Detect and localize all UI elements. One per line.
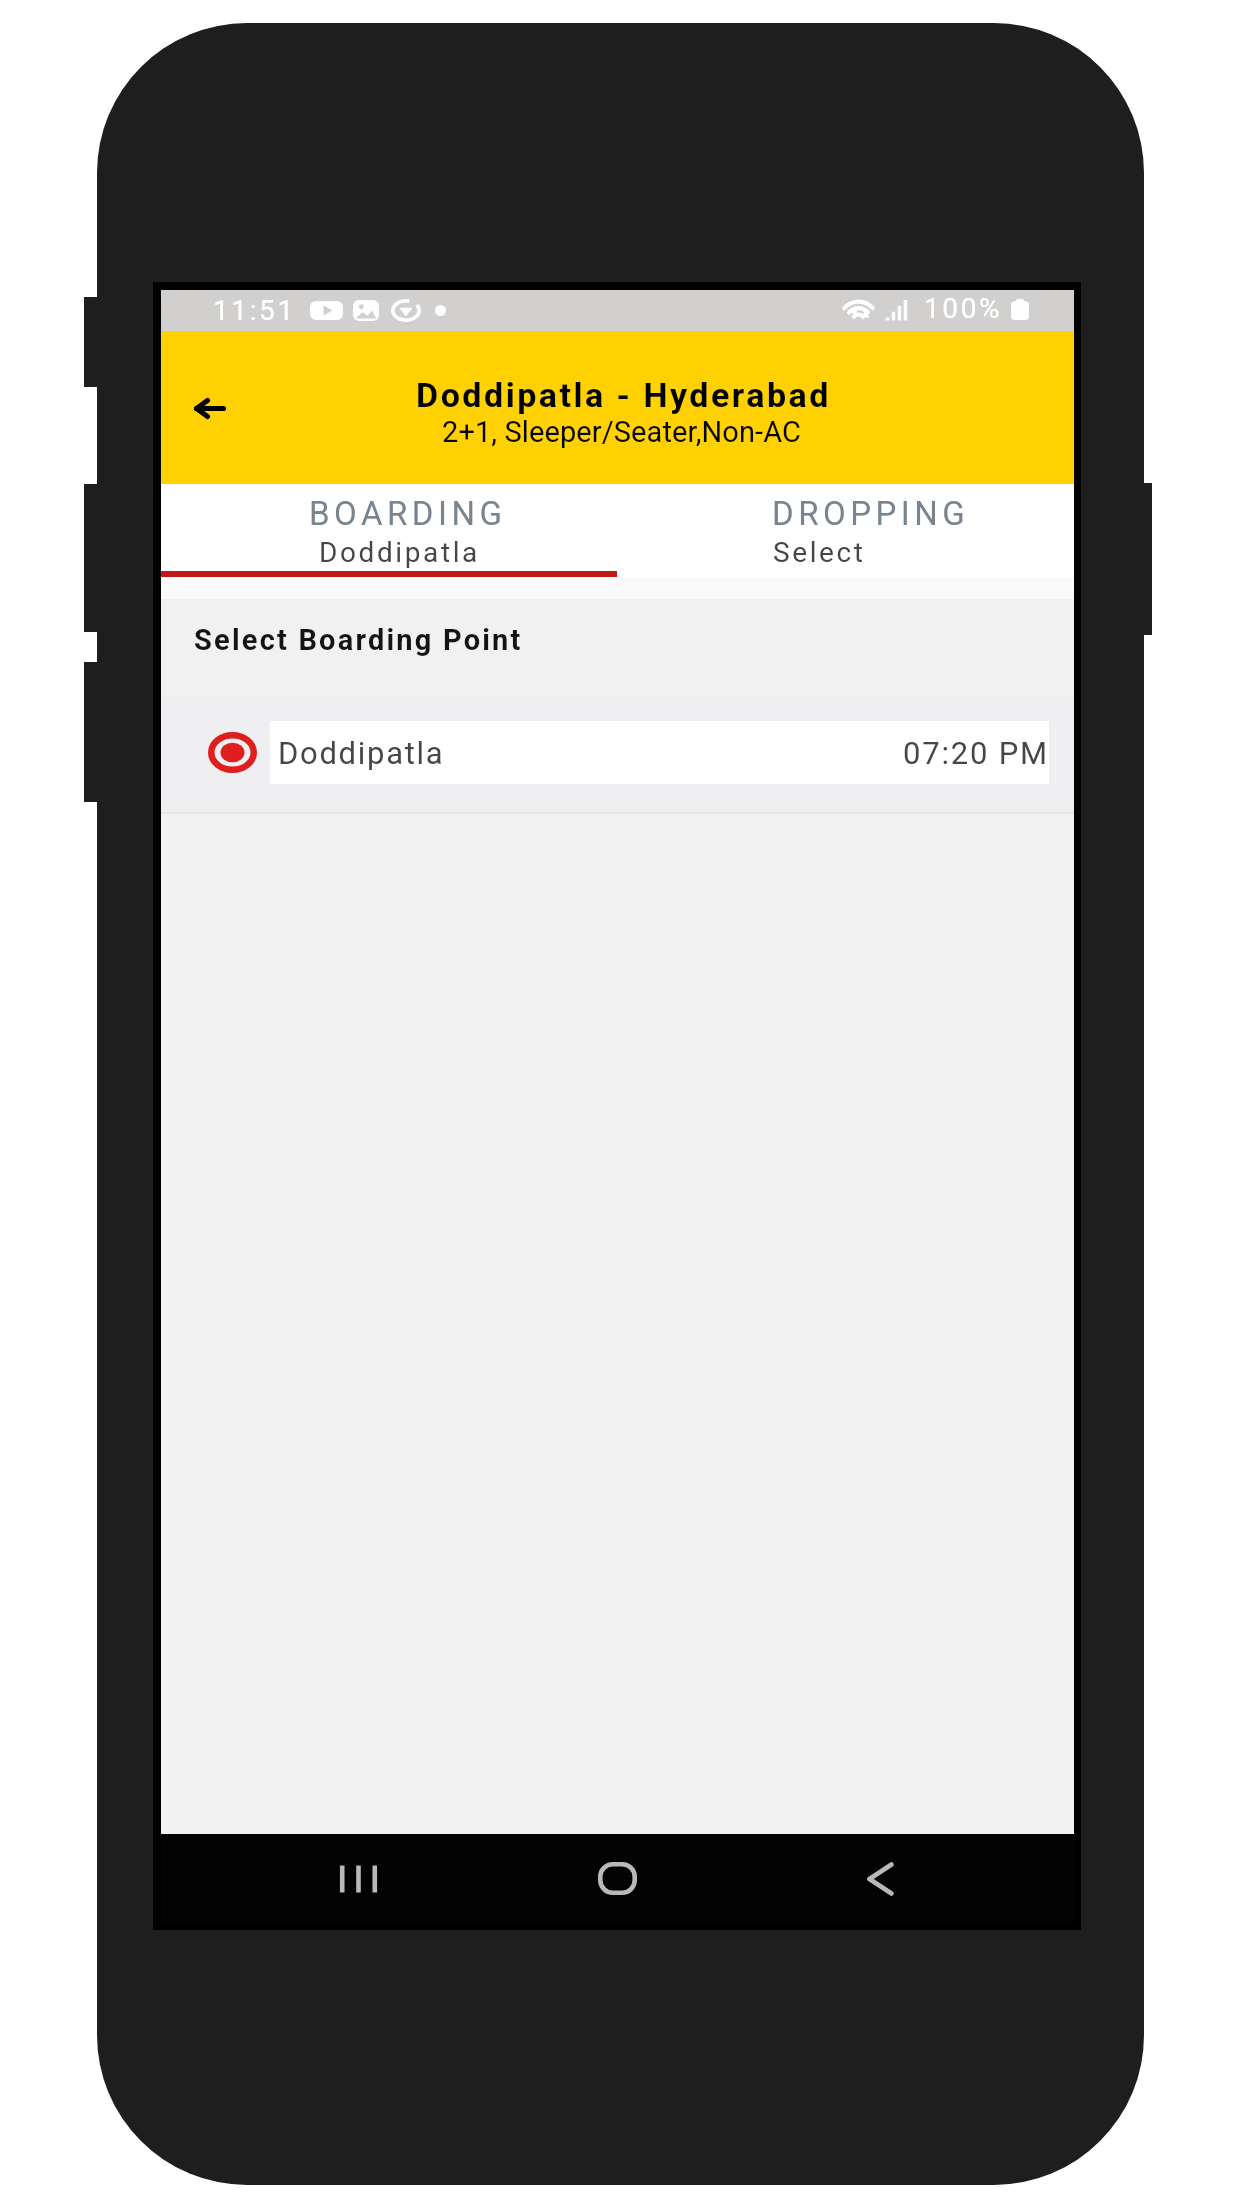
button[interactable]: Back: [820, 1834, 941, 1923]
staticText: DROPPING: [772, 494, 970, 533]
button[interactable]: BOARDING: [161, 484, 617, 571]
button[interactable]: Doddipatla: [161, 694, 1074, 810]
staticText: 100%: [924, 292, 1003, 325]
staticText: Select: [773, 536, 866, 569]
staticText: Select Boarding Point: [194, 623, 523, 657]
staticText: Doddipatla: [319, 536, 480, 569]
staticText: 2+1, Sleeper/Seater,Non-AC: [442, 415, 801, 449]
button[interactable]: Back: [172, 370, 248, 446]
button[interactable]: DROPPING: [617, 484, 1074, 571]
staticText: BOARDING: [309, 494, 507, 533]
staticText: 11:51: [213, 294, 296, 327]
button[interactable]: Home: [557, 1834, 678, 1923]
staticText: 07:20 PM: [903, 735, 1049, 771]
button[interactable]: Recent apps: [298, 1834, 419, 1923]
staticText: Doddipatla: [278, 735, 445, 771]
staticText: Doddipatla - Hyderabad: [416, 375, 831, 415]
